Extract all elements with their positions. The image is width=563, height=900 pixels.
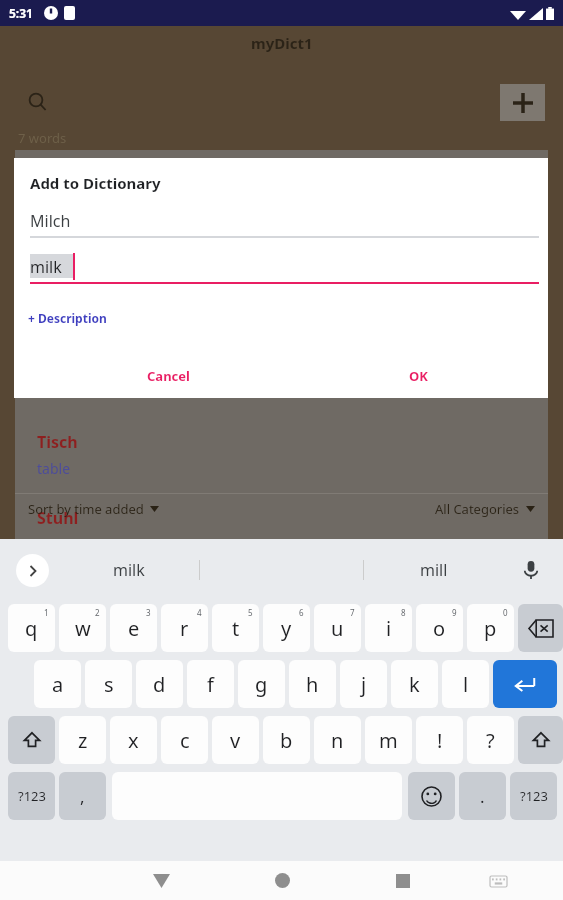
button[interactable]: Enter [493, 660, 557, 708]
button[interactable]: More suggestions [16, 554, 49, 587]
button[interactable]: Cancel [124, 361, 212, 391]
button[interactable]: q [8, 604, 55, 652]
staticText: p [484, 615, 497, 642]
button[interactable]: g [238, 660, 285, 708]
staticText: k [409, 671, 420, 698]
staticText: d [153, 671, 166, 698]
button[interactable]: Backspace [518, 604, 563, 652]
staticText: c [180, 727, 190, 754]
staticText: j [361, 671, 367, 698]
staticText: h [306, 671, 319, 698]
button[interactable]: . [459, 772, 506, 820]
staticText: ! [437, 727, 443, 754]
staticText: q [25, 615, 38, 642]
staticText: l [463, 671, 469, 698]
button[interactable]: p [467, 604, 514, 652]
button[interactable]: Sort by time added [28, 500, 159, 518]
staticText: Stuhl [37, 507, 79, 529]
staticText: s [104, 671, 114, 698]
button[interactable]: x [110, 716, 157, 764]
button[interactable]: Emoji [408, 772, 455, 820]
staticText: ?123 [18, 787, 46, 805]
button[interactable]: j [340, 660, 387, 708]
button[interactable]: Change keyboard [481, 864, 515, 898]
button[interactable]: Back [140, 861, 182, 900]
button[interactable]: e [110, 604, 157, 652]
staticText: 7 [350, 607, 355, 618]
button[interactable]: Milch [30, 210, 539, 240]
button[interactable]: milk [113, 559, 145, 581]
button[interactable]: r [161, 604, 208, 652]
button[interactable]: b [263, 716, 310, 764]
button[interactable]: Shift [518, 716, 563, 764]
staticText: v [230, 727, 241, 754]
button[interactable]: i [365, 604, 412, 652]
staticText: n [331, 727, 344, 754]
button[interactable]: mill [420, 559, 448, 581]
button[interactable]: hören [15, 150, 548, 219]
button[interactable]: Recents [382, 861, 424, 900]
staticText: i [386, 615, 392, 642]
staticText: m [379, 727, 398, 754]
button[interactable]: o [416, 604, 463, 652]
staticText: 4 [197, 607, 202, 618]
button[interactable]: ! [416, 716, 463, 764]
button[interactable]: Home [261, 861, 303, 900]
staticText: 6 [299, 607, 304, 618]
staticText: 8 [401, 607, 406, 618]
staticText: y [281, 615, 292, 642]
staticText: OK [409, 367, 428, 385]
button[interactable]: Stuhl [15, 494, 548, 539]
button[interactable]: l [442, 660, 489, 708]
staticText: Add to Dictionary [30, 173, 161, 193]
staticText: r [180, 615, 189, 642]
button[interactable]: OK [382, 361, 454, 391]
button[interactable]: u [314, 604, 361, 652]
staticText: 7 words [18, 129, 67, 147]
button[interactable]: Shift [8, 716, 55, 764]
button[interactable]: ?123 [510, 772, 557, 820]
button[interactable]: Tisch [15, 431, 548, 494]
staticText: x [128, 727, 139, 754]
button[interactable]: t [212, 604, 259, 652]
button[interactable]: + Description [28, 310, 107, 326]
staticText: table [37, 459, 71, 478]
staticText: 3 [146, 607, 151, 618]
staticText: t [232, 615, 240, 642]
staticText: 0 [503, 607, 508, 618]
button[interactable]: y [263, 604, 310, 652]
staticText: 5:31 [9, 5, 33, 21]
button[interactable]: f [187, 660, 234, 708]
button[interactable]: d [136, 660, 183, 708]
button[interactable]: v [212, 716, 259, 764]
button[interactable]: Voice input [519, 558, 543, 582]
button[interactable]: All Categories [435, 500, 535, 518]
button[interactable]: Search [22, 86, 54, 118]
button[interactable]: z [59, 716, 106, 764]
button[interactable]: ? [467, 716, 514, 764]
staticText: ? [486, 727, 495, 754]
button[interactable]: h [289, 660, 336, 708]
button[interactable]: s [85, 660, 132, 708]
button[interactable]: k [391, 660, 438, 708]
staticText: a [52, 671, 64, 698]
staticText: 9 [452, 607, 457, 618]
staticText: e [128, 615, 140, 642]
staticText: milk [30, 256, 62, 278]
staticText: , [80, 785, 85, 808]
staticText: Sort by time added [28, 500, 144, 518]
button[interactable]: ?123 [8, 772, 55, 820]
button[interactable]: , [59, 772, 106, 820]
button[interactable]: w [59, 604, 106, 652]
button[interactable]: c [161, 716, 208, 764]
button[interactable]: Add word [500, 84, 545, 121]
button[interactable]: n [314, 716, 361, 764]
staticText: u [331, 615, 344, 642]
staticText: f [207, 671, 214, 698]
button[interactable]: milk [30, 256, 539, 282]
staticText: g [255, 671, 268, 698]
button[interactable]: a [34, 660, 81, 708]
button[interactable]: m [365, 716, 412, 764]
